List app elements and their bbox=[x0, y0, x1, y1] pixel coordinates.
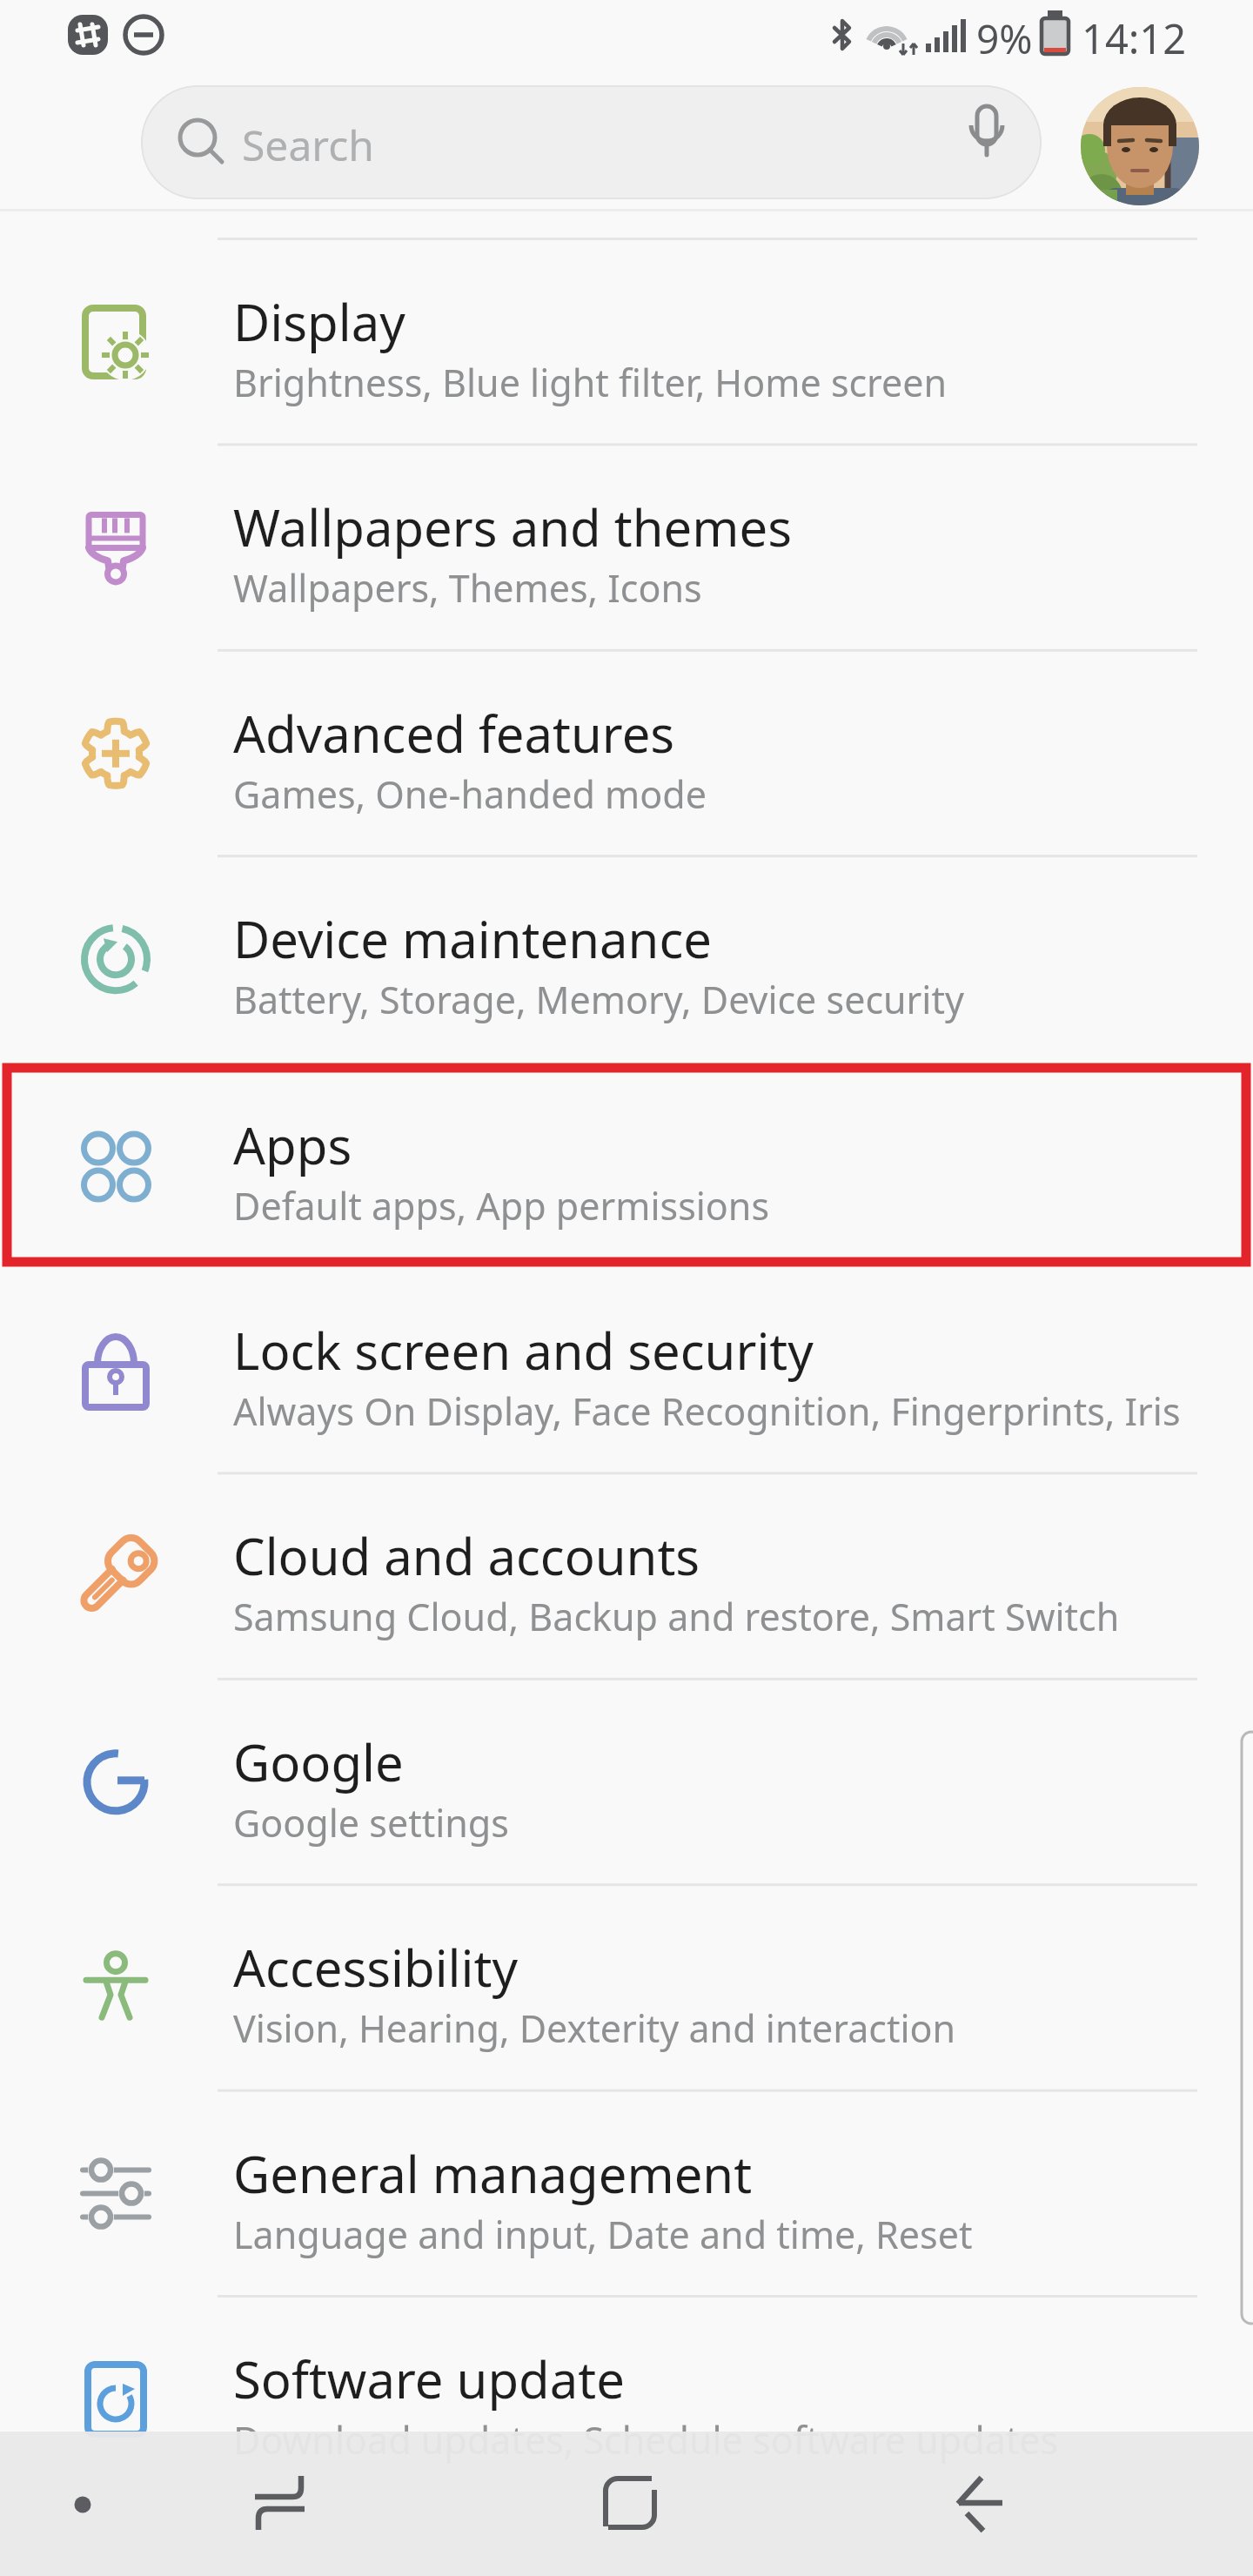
staticText: Software update bbox=[233, 2345, 625, 2413]
button[interactable] bbox=[1081, 87, 1199, 205]
staticText: Always On Display, Face Recognition, Fin… bbox=[233, 1385, 1181, 1437]
staticText: Samsung Cloud, Backup and restore, Smart… bbox=[233, 1591, 1120, 1642]
button[interactable]: Apps bbox=[0, 1061, 1253, 1266]
staticText: Accessibility bbox=[233, 1933, 519, 2002]
staticText: Google bbox=[233, 1727, 404, 1796]
staticText: Google settings bbox=[233, 1797, 509, 1848]
button[interactable]: Device maintenance bbox=[0, 855, 1253, 1060]
button[interactable] bbox=[226, 2445, 339, 2559]
staticText: Lock screen and security bbox=[233, 1316, 814, 1385]
staticText: Vision, Hearing, Dexterity and interacti… bbox=[233, 2002, 956, 2054]
staticText: Cloud and accounts bbox=[233, 1521, 700, 1590]
staticText: Wallpapers and themes bbox=[233, 493, 793, 561]
staticText: Advanced features bbox=[233, 699, 675, 768]
button[interactable] bbox=[35, 2454, 131, 2550]
staticText: 14:12 bbox=[1082, 10, 1187, 66]
staticText: Brightness, Blue light filter, Home scre… bbox=[233, 357, 948, 408]
button[interactable]: Google bbox=[0, 1678, 1253, 1883]
button[interactable]: Display bbox=[0, 238, 1253, 443]
staticText: Battery, Storage, Memory, Device securit… bbox=[233, 974, 964, 1025]
button[interactable] bbox=[922, 2445, 1035, 2559]
button[interactable]: Accessibility bbox=[0, 1883, 1253, 2089]
staticText: 9% bbox=[976, 11, 1033, 66]
button[interactable]: Lock screen and security bbox=[0, 1266, 1253, 1472]
staticText: Device maintenance bbox=[233, 904, 712, 973]
staticText: Display bbox=[233, 287, 405, 356]
button[interactable] bbox=[574, 2445, 687, 2559]
button[interactable]: General management bbox=[0, 2090, 1253, 2295]
button[interactable]: Software update bbox=[0, 2295, 1253, 2500]
staticText: Games, One-handed mode bbox=[233, 768, 707, 820]
button[interactable]: Wallpapers and themes bbox=[0, 443, 1253, 648]
staticText: Search bbox=[242, 117, 374, 173]
staticText: General management bbox=[233, 2139, 753, 2208]
staticText: Default apps, App permissions bbox=[233, 1180, 770, 1231]
staticText: Wallpapers, Themes, Icons bbox=[233, 562, 702, 614]
staticText: Download updates, Schedule software upda… bbox=[233, 2414, 1059, 2465]
button[interactable]: Cloud and accounts bbox=[0, 1472, 1253, 1677]
button[interactable]: Search bbox=[141, 85, 1042, 199]
staticText: Apps bbox=[233, 1110, 352, 1179]
staticText: Language and input, Date and time, Reset bbox=[233, 2209, 973, 2260]
button[interactable]: Advanced features bbox=[0, 649, 1253, 855]
